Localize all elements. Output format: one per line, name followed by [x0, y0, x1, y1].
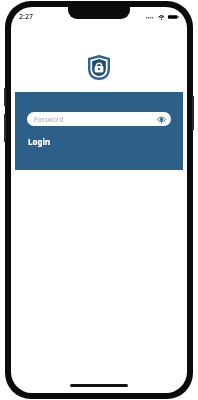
staticText: 2:27 [19, 12, 33, 22]
staticText: Login [28, 136, 51, 147]
staticText: Password [34, 115, 64, 124]
button[interactable]: Show password [157, 115, 166, 124]
button[interactable]: Login [27, 135, 52, 148]
button[interactable]: Password [27, 112, 171, 126]
